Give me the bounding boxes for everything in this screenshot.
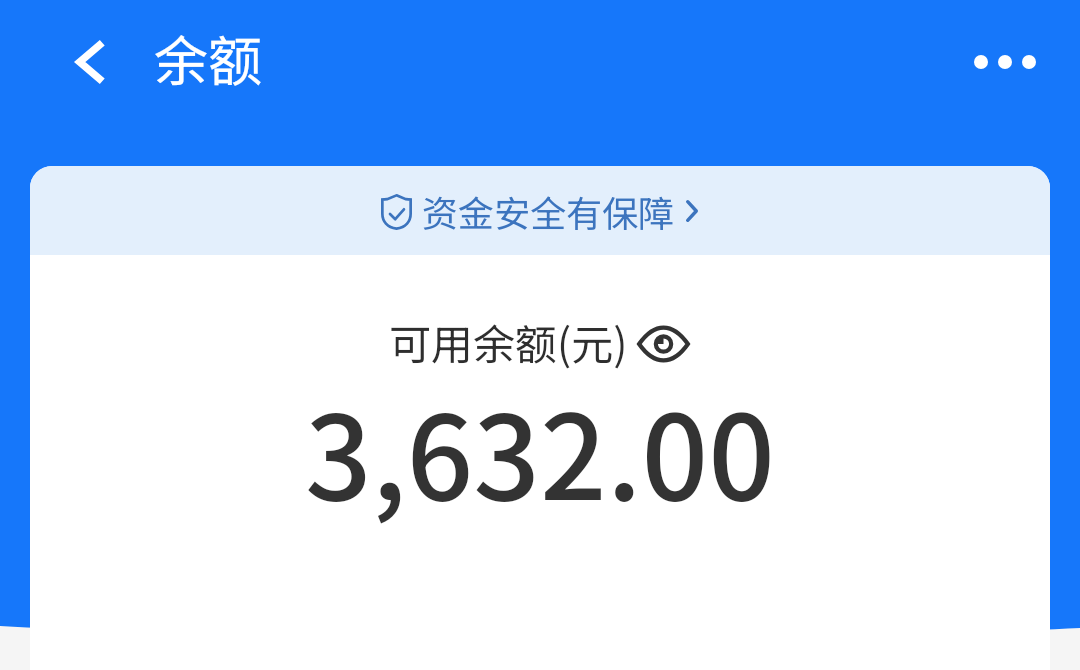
staticText: 3,632.00	[30, 364, 1050, 533]
button[interactable]: More options	[950, 7, 1060, 117]
button[interactable]: Toggle balance visibility	[635, 318, 691, 366]
button[interactable]: 资金安全有保障	[30, 166, 1050, 255]
button[interactable]: Back	[56, 0, 124, 124]
staticText: 余额	[154, 18, 262, 96]
staticText: 可用余额(元)	[389, 311, 628, 372]
staticText: 资金安全有保障	[422, 185, 675, 237]
